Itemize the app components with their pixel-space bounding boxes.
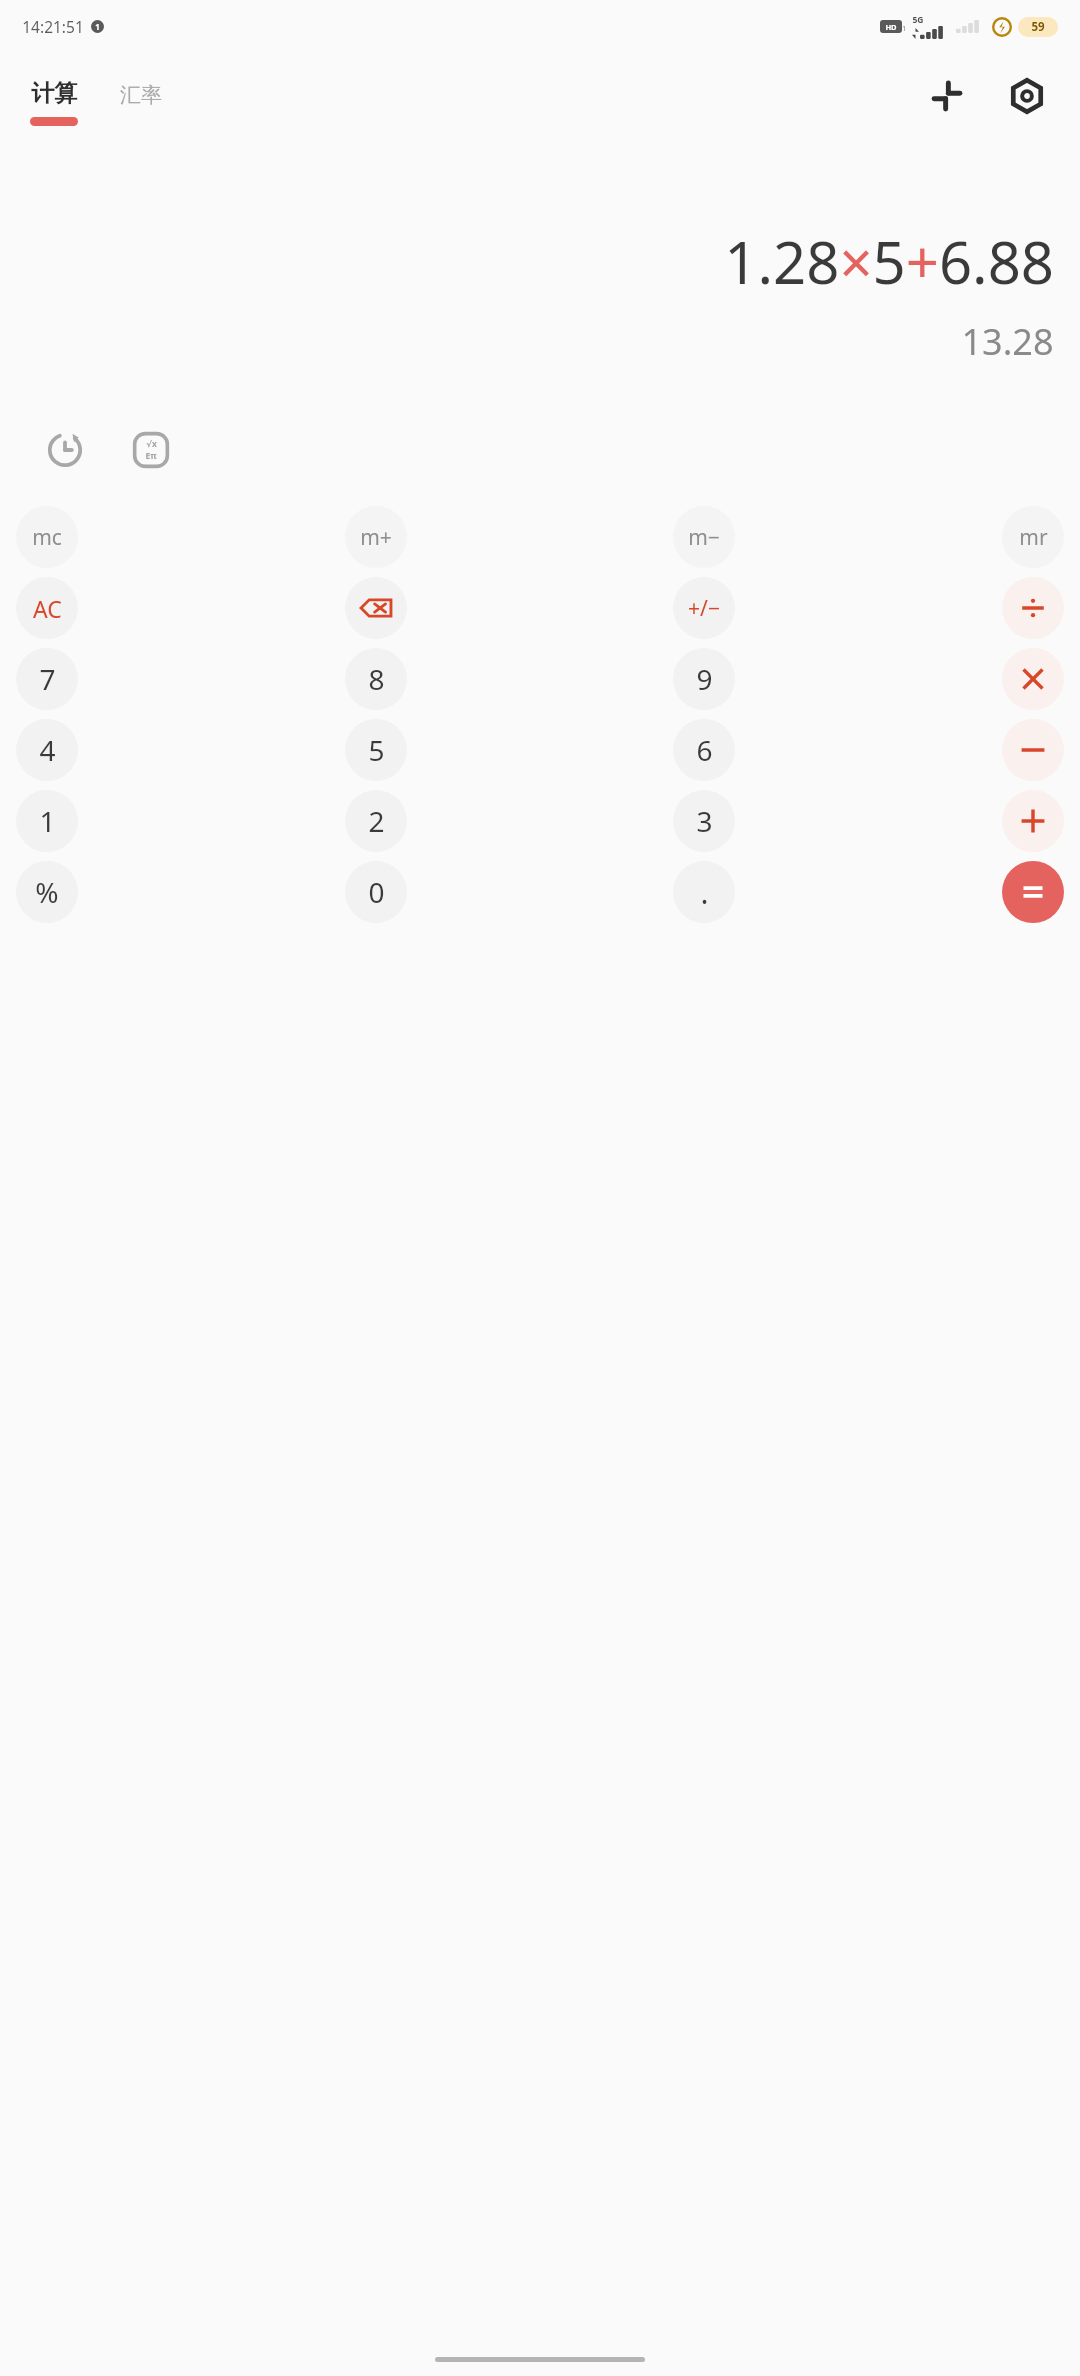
staticText: √x	[146, 438, 157, 450]
button[interactable]: 2	[345, 790, 407, 852]
button[interactable]: Settings	[1000, 69, 1054, 123]
staticText: 14:21:51	[22, 16, 84, 37]
button[interactable]: m−	[673, 506, 735, 568]
button[interactable]	[1002, 790, 1064, 852]
button[interactable]	[1002, 648, 1064, 710]
staticText: 0	[368, 873, 385, 911]
staticText: .	[700, 872, 709, 913]
button[interactable]: 3	[673, 790, 735, 852]
staticText: 1.28×5+6.88	[724, 222, 1054, 301]
button[interactable]	[1002, 577, 1064, 639]
button[interactable]: +/−	[673, 577, 735, 639]
button[interactable]: AC	[16, 577, 78, 639]
button[interactable]: 9	[673, 648, 735, 710]
staticText: +/−	[688, 594, 720, 623]
button[interactable]: 汇率	[114, 90, 168, 116]
button[interactable]: 4	[16, 719, 78, 781]
staticText: HD	[885, 22, 897, 32]
button[interactable]: 计算	[24, 75, 84, 130]
button[interactable]: 7	[16, 648, 78, 710]
staticText: Eπ	[145, 450, 157, 462]
staticText: 13.28	[961, 317, 1054, 366]
button[interactable]: Scientific mode	[122, 421, 180, 479]
staticText: 6	[696, 731, 713, 769]
button[interactable]	[1002, 719, 1064, 781]
staticText: 1	[95, 21, 100, 32]
staticText: 2	[368, 802, 385, 840]
staticText: 计算	[31, 79, 77, 108]
button[interactable]: Backspace	[345, 577, 407, 639]
staticText: AC	[33, 593, 62, 624]
staticText: %	[35, 873, 59, 911]
staticText: 5G	[912, 14, 924, 26]
button[interactable]: mc	[16, 506, 78, 568]
staticText: mr	[1019, 523, 1048, 552]
staticText: 9	[696, 660, 713, 698]
button[interactable]: mr	[1002, 506, 1064, 568]
button[interactable]: 6	[673, 719, 735, 781]
staticText: 8	[368, 660, 385, 698]
staticText: 4	[39, 731, 56, 769]
button[interactable]	[1002, 861, 1064, 923]
staticText: 59	[1031, 19, 1045, 35]
button[interactable]: %	[16, 861, 78, 923]
button[interactable]: 0	[345, 861, 407, 923]
button[interactable]: 1	[16, 790, 78, 852]
staticText: m+	[360, 523, 392, 552]
button[interactable]: .	[673, 861, 735, 923]
staticText: 1	[902, 24, 906, 33]
staticText: mc	[32, 523, 62, 552]
staticText: 7	[39, 660, 56, 698]
button[interactable]: 5	[345, 719, 407, 781]
button[interactable]: History	[36, 421, 94, 479]
staticText: 汇率	[120, 82, 162, 108]
button[interactable]: Expand	[920, 69, 974, 123]
staticText: m−	[688, 523, 720, 552]
button[interactable]: 8	[345, 648, 407, 710]
staticText: 3	[696, 802, 713, 840]
staticText: 1	[39, 802, 56, 840]
button[interactable]: m+	[345, 506, 407, 568]
staticText: 5	[368, 731, 385, 769]
